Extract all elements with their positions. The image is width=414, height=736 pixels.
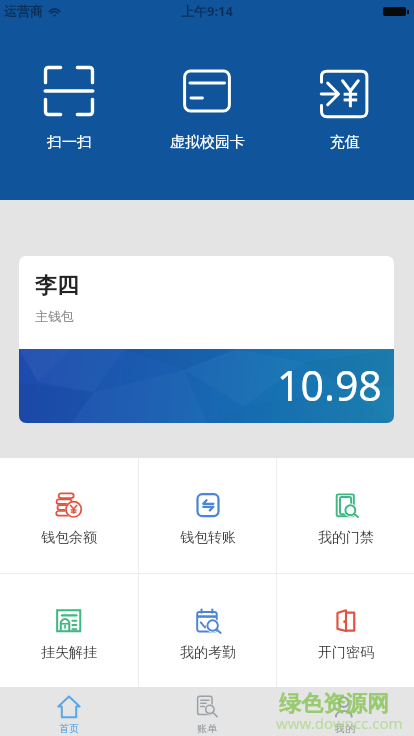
staticText: 扫一扫 [47,133,92,152]
staticText: 绿色资源网 [279,690,389,718]
button[interactable]: 账单 [138,687,276,736]
staticText: 钱包转账 [180,529,236,547]
staticText: 挂失解挂 [41,644,97,662]
staticText: 主钱包 [35,308,74,324]
button[interactable]: 李四 [19,256,394,423]
other: 充值 [318,64,372,118]
button[interactable]: 我的考勤 [139,574,276,687]
staticText: 开门密码 [318,644,374,662]
staticText: 上午9:14 [181,2,233,20]
staticText: 我的考勤 [180,644,236,662]
staticText: 充值 [330,133,360,152]
other: 扫一扫 [42,64,96,118]
staticText: 我的 [335,722,355,735]
staticText: www.downcc.com [276,713,403,733]
button[interactable]: 钱包转账 [139,458,276,573]
button[interactable]: 我的 [276,687,414,736]
other: 虚拟校园卡 [180,64,234,118]
staticText: 李四 [35,272,79,300]
staticText: 首页 [59,722,79,735]
staticText: 虚拟校园卡 [170,133,245,152]
button[interactable]: 虚拟校园卡 [138,62,276,154]
staticText: 钱包余额 [41,529,97,547]
button[interactable]: 挂失解挂 [0,574,138,687]
button[interactable]: 开门密码 [277,574,414,687]
staticText: 10.98 [277,357,382,413]
button[interactable]: 扫一扫 [0,62,138,154]
staticText: 运营商 [4,3,43,19]
button[interactable]: 首页 [0,687,138,736]
staticText: 我的门禁 [318,529,374,547]
staticText: 账单 [197,722,217,735]
button[interactable]: 钱包余额 [0,458,138,573]
button[interactable]: 我的门禁 [277,458,414,573]
button[interactable]: 充值 [276,62,414,154]
